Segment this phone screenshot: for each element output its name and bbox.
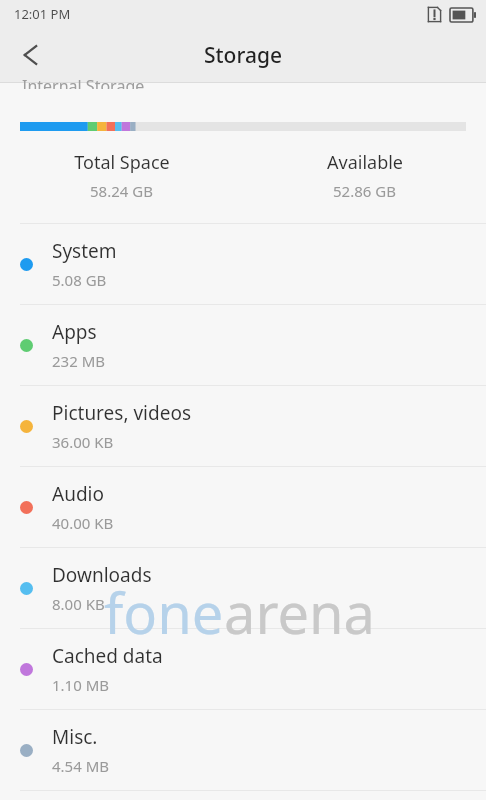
staticText: System	[52, 238, 117, 264]
staticText: Available	[327, 150, 403, 175]
staticText: 40.00 KB	[52, 513, 114, 533]
button[interactable]: Total Space	[0, 150, 243, 201]
staticText: 4.54 MB	[52, 756, 110, 776]
button[interactable]: Misc.	[0, 710, 486, 790]
button[interactable]: Cached data	[0, 629, 486, 709]
staticText: fone	[104, 574, 224, 650]
staticText: Pictures, videos	[52, 400, 191, 426]
button[interactable]: Back	[0, 28, 62, 82]
button[interactable]: Internal Storage	[0, 83, 486, 97]
staticText: Storage	[204, 41, 282, 70]
staticText: 8.00 KB	[52, 594, 105, 614]
staticText: arena	[224, 574, 376, 650]
button[interactable]: Audio	[0, 467, 486, 547]
staticText: Total Space	[74, 150, 170, 175]
staticText: Cached data	[52, 643, 163, 669]
staticText: Internal Storage	[22, 75, 145, 89]
staticText: 12:01 PM	[14, 5, 71, 23]
button[interactable]: System	[0, 224, 486, 304]
staticText: 36.00 KB	[52, 432, 114, 452]
button[interactable]: Downloads	[0, 548, 486, 628]
staticText: 1.10 MB	[52, 675, 110, 695]
staticText: 5.08 GB	[52, 270, 107, 290]
staticText: Apps	[52, 319, 97, 345]
staticText: Audio	[52, 481, 104, 507]
staticText: 232 MB	[52, 351, 105, 371]
button[interactable]: Available	[243, 150, 486, 201]
button[interactable]: Pictures, videos	[0, 386, 486, 466]
staticText: Downloads	[52, 562, 152, 588]
button[interactable]: Apps	[0, 305, 486, 385]
staticText: Misc.	[52, 724, 98, 750]
staticText: 58.24 GB	[90, 181, 153, 201]
staticText: 52.86 GB	[333, 181, 396, 201]
